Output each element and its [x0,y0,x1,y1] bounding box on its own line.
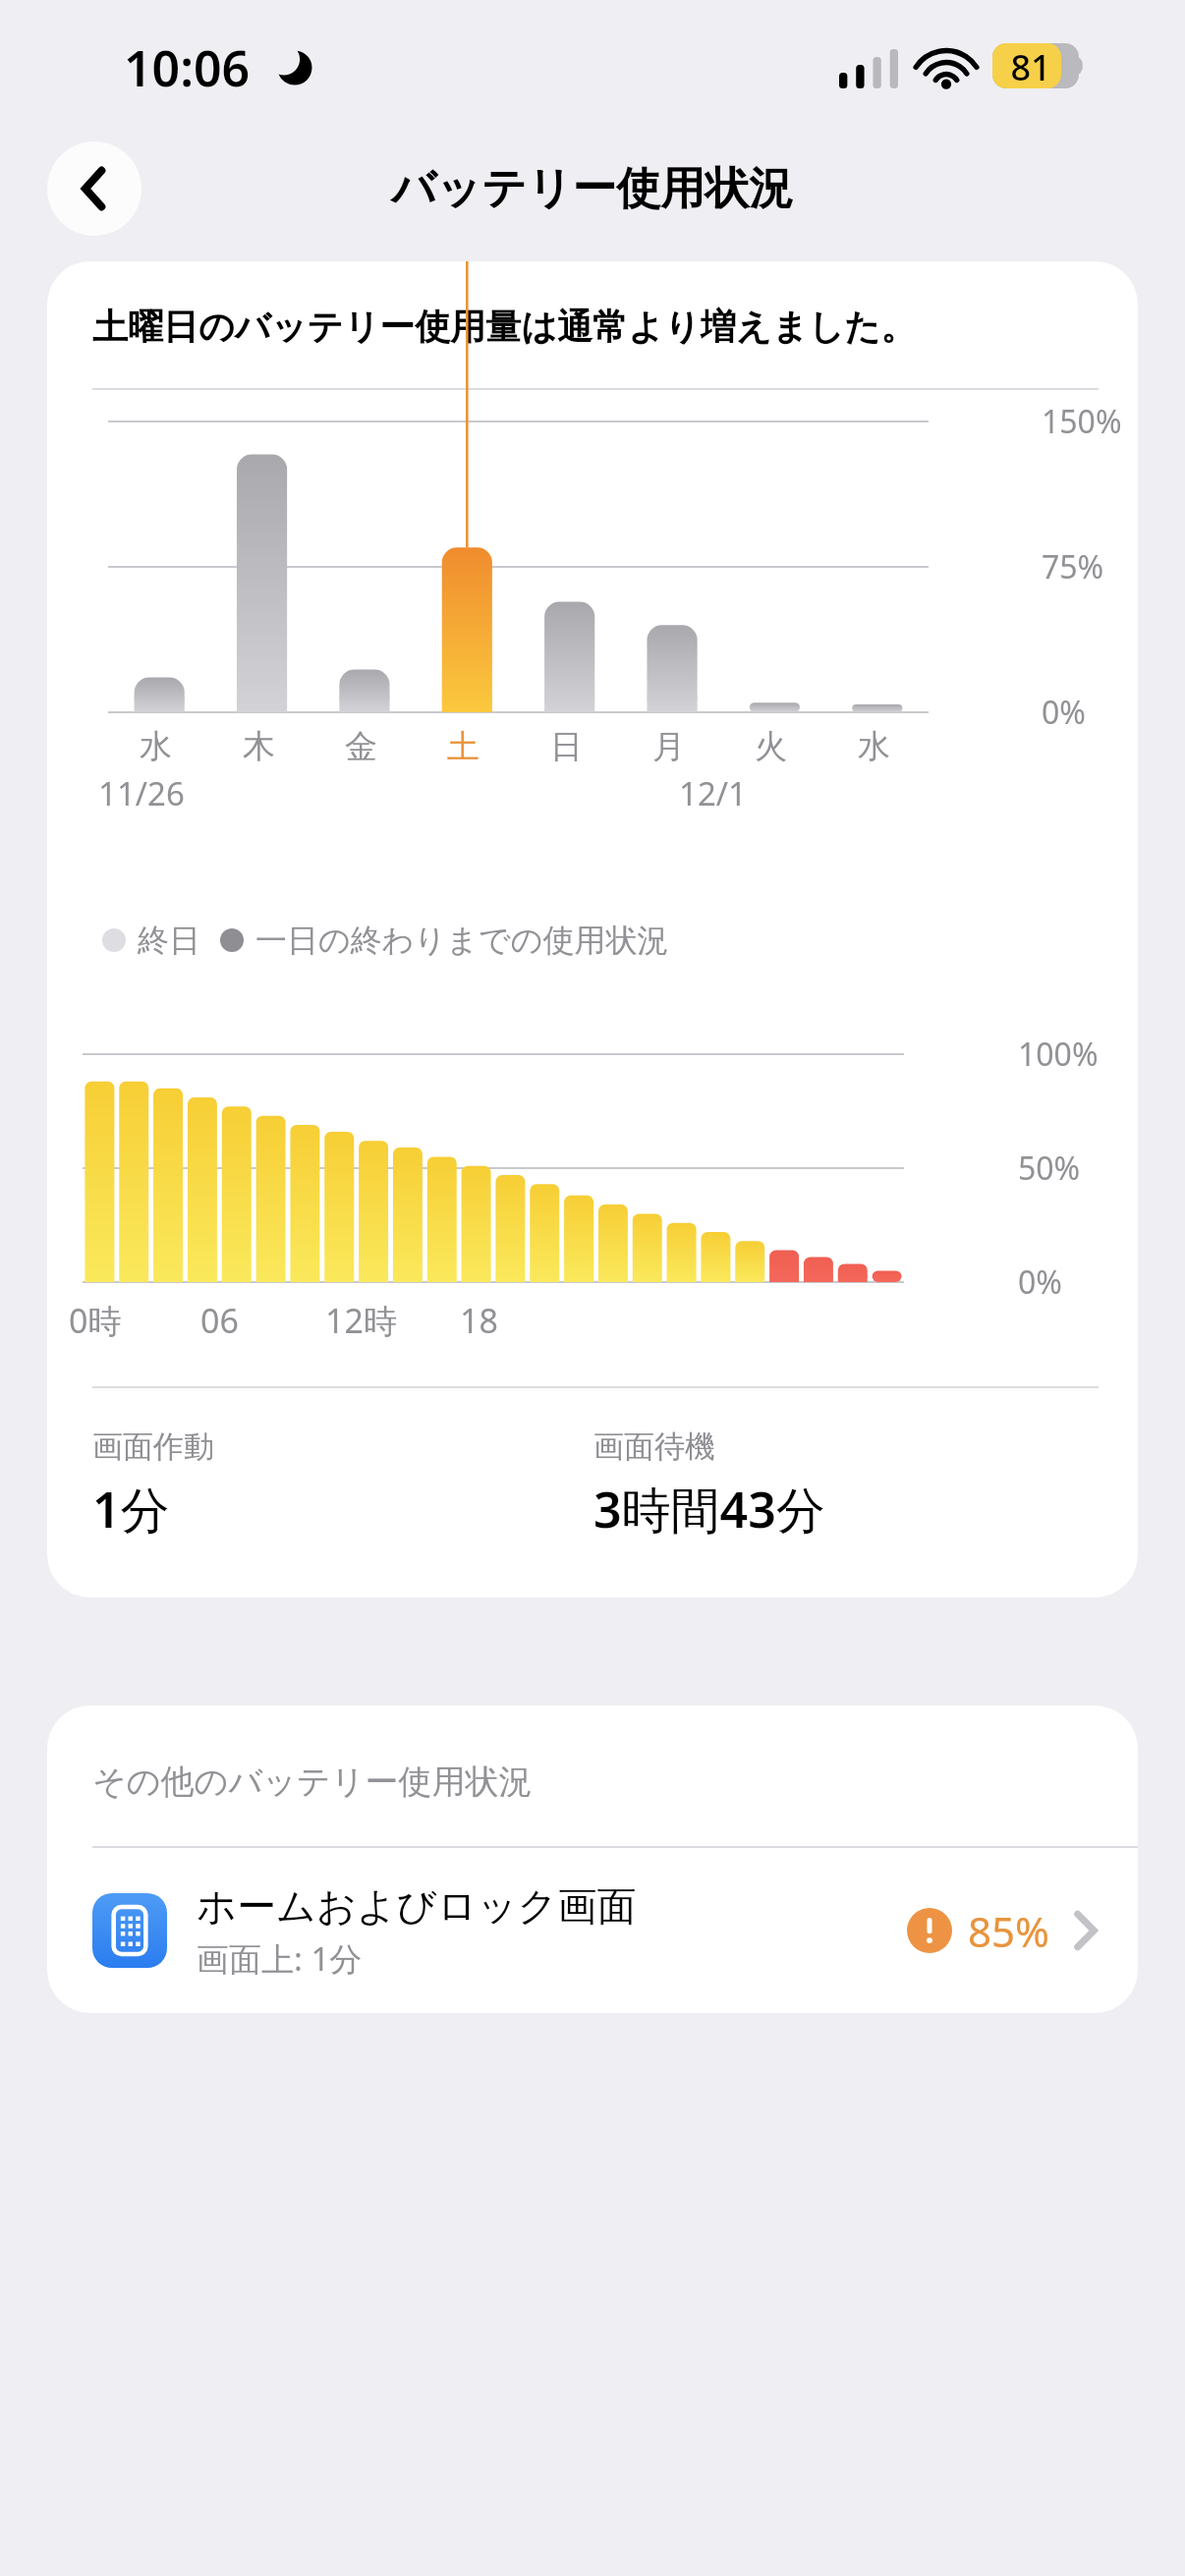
staticText: 水 [140,726,172,767]
button[interactable]: ホームおよびロック画面 [47,1848,1138,2013]
staticText: 18 [460,1298,498,1343]
staticText: 画面作動 [92,1428,214,1466]
staticText: 土曜日のバッテリー使用量は通常より増えました。 [92,305,917,349]
staticText: 木 [243,726,275,767]
staticText: 終日 [138,921,200,960]
staticText: 日 [550,726,583,767]
staticText: 一日の終わりまでの使用状況 [255,921,669,960]
staticText: 85% [968,1903,1049,1959]
staticText: 12/1 [679,771,747,815]
staticText: 火 [755,726,787,767]
staticText: 0時 [69,1298,122,1343]
staticText: 0% [1018,1260,1062,1304]
staticText: 50% [1018,1147,1081,1190]
staticText: バッテリー使用状況 [391,161,794,217]
staticText: 100% [1018,1033,1099,1076]
staticText: 1分 [92,1476,170,1542]
staticText: ホームおよびロック画面 [197,1881,637,1931]
staticText: 画面待機 [593,1428,715,1466]
staticText: 11/26 [98,771,185,815]
staticText: その他のバッテリー使用状況 [92,1761,533,1803]
button[interactable]: Back [47,141,141,236]
staticText: 150% [1042,400,1122,443]
staticText: 水 [858,726,890,767]
staticText: 75% [1042,545,1104,588]
staticText: 月 [652,726,685,767]
staticText: 81 [1000,43,1061,88]
staticText: 0% [1042,691,1086,734]
staticText: 06 [200,1298,239,1343]
staticText: 画面上: 1分 [197,1936,363,1981]
staticText: 3時間43分 [593,1476,825,1542]
staticText: 12時 [325,1298,397,1343]
staticText: 土 [447,726,480,767]
staticText: 10:06 [124,34,251,101]
staticText: 金 [345,726,377,767]
